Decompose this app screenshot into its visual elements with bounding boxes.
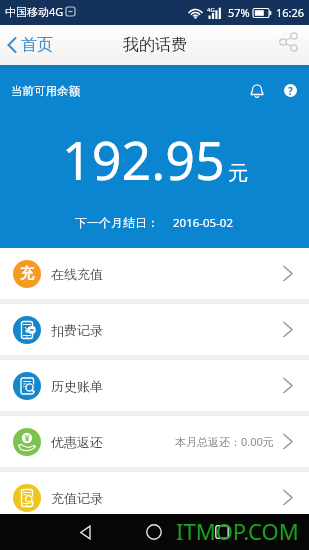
button[interactable]: 充 xyxy=(0,248,309,299)
button[interactable]: 扣费记录 xyxy=(0,304,309,355)
button[interactable] xyxy=(70,517,100,547)
staticText: 充 xyxy=(20,265,34,283)
button[interactable]: 首页 xyxy=(7,35,53,55)
button[interactable] xyxy=(241,75,271,105)
button[interactable]: ? xyxy=(275,75,305,105)
staticText: 中国移动4G xyxy=(5,4,64,19)
staticText: 元 xyxy=(228,161,248,186)
button[interactable] xyxy=(277,30,301,54)
button[interactable] xyxy=(139,517,169,547)
button[interactable]: 历史账单 xyxy=(0,360,309,411)
staticText: 充值记录 xyxy=(51,490,103,506)
staticText: 我的话费 xyxy=(123,35,187,55)
staticText: 在线充值 xyxy=(51,266,103,282)
button[interactable]: 优惠返还 xyxy=(0,416,309,467)
button[interactable]: 充值记录 xyxy=(0,472,309,523)
staticText: 16:26 xyxy=(276,5,305,20)
staticText: 历史账单 xyxy=(51,378,103,394)
staticText: 下一个月结日： xyxy=(75,215,159,230)
staticText: 192.95 xyxy=(62,124,225,195)
staticText: 4G xyxy=(207,6,215,14)
staticText: 57% xyxy=(228,5,250,20)
staticText: 当前可用余额 xyxy=(11,84,80,98)
button[interactable] xyxy=(207,517,237,547)
staticText: 本月总返还：0.00元 xyxy=(175,434,274,449)
staticText: 2016-05-02 xyxy=(173,215,234,231)
staticText: ? xyxy=(288,84,293,97)
staticText: 首页 xyxy=(21,35,53,55)
staticText: 优惠返还 xyxy=(51,434,103,450)
staticText: 扣费记录 xyxy=(51,322,103,338)
staticText: ITMOP.COM xyxy=(176,516,299,546)
